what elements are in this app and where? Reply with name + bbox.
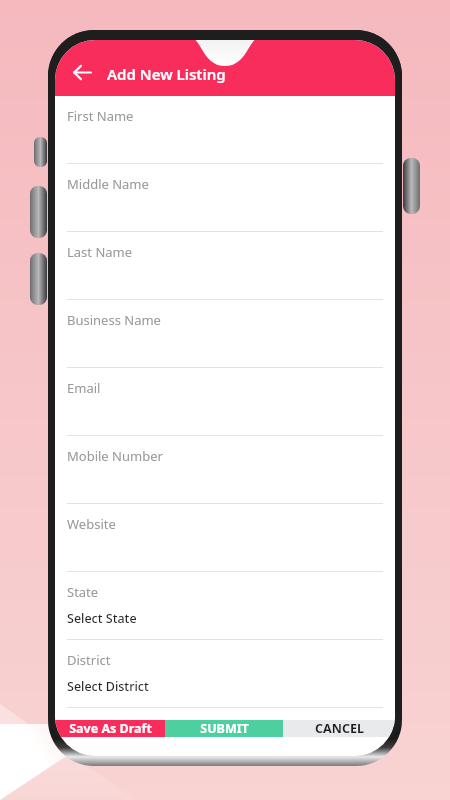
button[interactable]: Last Name: [55, 232, 395, 300]
staticText: First Name: [67, 107, 134, 125]
button[interactable]: SUBMIT: [165, 720, 283, 737]
staticText: Select State: [67, 610, 137, 627]
button[interactable]: Mobile Number: [55, 436, 395, 504]
staticText: Select District: [67, 678, 149, 695]
button[interactable]: First Name: [55, 96, 395, 164]
staticText: Add New Listing: [107, 64, 226, 84]
button[interactable]: Middle Name: [55, 164, 395, 232]
staticText: Save As Draft: [69, 720, 152, 737]
button[interactable]: Business Name: [55, 300, 395, 368]
button[interactable]: Email: [55, 368, 395, 436]
staticText: Middle Name: [67, 175, 149, 193]
button[interactable]: Back: [65, 55, 99, 89]
staticText: SUBMIT: [200, 720, 249, 737]
button[interactable]: District: [55, 640, 395, 708]
button[interactable]: State: [55, 572, 395, 640]
button[interactable]: Website: [55, 504, 395, 572]
staticText: Last Name: [67, 243, 133, 261]
staticText: Mobile Number: [67, 447, 163, 465]
button[interactable]: Save As Draft: [55, 720, 165, 737]
staticText: CANCEL: [315, 720, 364, 737]
staticText: Business Name: [67, 311, 161, 329]
staticText: District: [67, 651, 111, 669]
staticText: Website: [67, 515, 116, 533]
button[interactable]: CANCEL: [283, 720, 395, 737]
staticText: Email: [67, 379, 101, 397]
staticText: State: [67, 583, 99, 601]
